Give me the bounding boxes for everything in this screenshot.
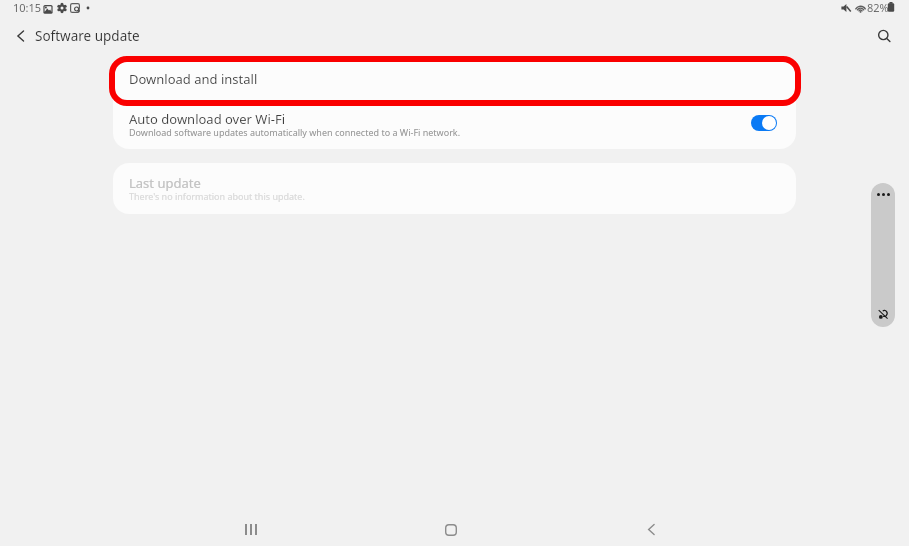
staticText: Download and install (129, 70, 258, 88)
staticText: There's no information about this update… (129, 190, 305, 202)
staticText: Auto download over Wi-Fi (129, 110, 286, 128)
button[interactable]: Search (867, 19, 901, 53)
button[interactable]: Floating toolbar (871, 183, 895, 327)
button[interactable]: Last update (113, 163, 796, 214)
button[interactable]: Auto download over Wi-Fi (751, 115, 777, 131)
staticText: Last update (129, 174, 201, 192)
staticText: 82% (867, 0, 889, 15)
button[interactable]: Recent apps (231, 513, 271, 546)
button[interactable]: Download and install (113, 56, 796, 101)
button[interactable]: Navigate up (4, 19, 38, 53)
button[interactable]: Auto download over Wi-Fi (113, 101, 796, 149)
button[interactable]: Back (631, 513, 671, 546)
staticText: Download software updates automatically … (129, 126, 461, 138)
staticText: Software update (35, 27, 140, 45)
staticText: 10:15 (13, 0, 42, 15)
button[interactable]: Home (431, 513, 471, 546)
